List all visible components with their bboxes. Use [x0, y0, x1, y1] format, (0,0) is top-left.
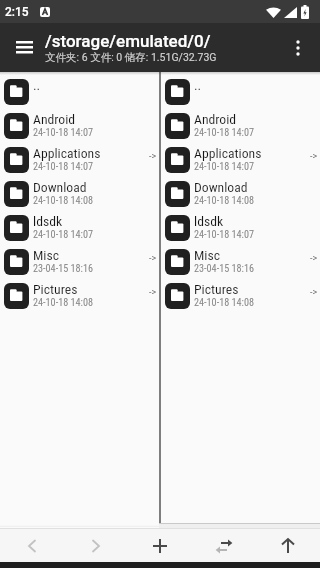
button[interactable]: Android [161, 109, 320, 143]
staticText: Pictures [194, 281, 239, 297]
staticText: 24-10-18 14:07 [194, 127, 255, 139]
staticText: -> [310, 253, 318, 264]
staticText: -> [310, 287, 318, 298]
staticText: 24-10-18 14:07 [194, 229, 255, 241]
button[interactable] [192, 529, 256, 562]
staticText: -> [149, 287, 157, 298]
button[interactable]: Download [0, 177, 159, 211]
staticText: 24-10-18 14:08 [194, 297, 255, 309]
staticText: 24-10-18 14:07 [33, 229, 94, 241]
staticText: -> [310, 151, 318, 162]
button[interactable]: Applications [0, 143, 159, 177]
button[interactable]: Download [161, 177, 320, 211]
button[interactable] [8, 31, 40, 63]
staticText: 24-10-18 14:08 [33, 297, 94, 309]
button[interactable]: .. [161, 75, 320, 109]
staticText: 24-10-18 14:08 [194, 195, 255, 207]
staticText: .. [194, 77, 202, 93]
button[interactable]: Misc [161, 245, 320, 279]
staticText: Download [194, 179, 248, 195]
staticText: ldsdk [33, 213, 63, 229]
staticText: Applications [194, 145, 262, 161]
staticText: /storage/emulated/0/ [45, 31, 211, 51]
staticText: Misc [33, 247, 60, 263]
staticText: Misc [194, 247, 221, 263]
staticText: Android [194, 111, 237, 127]
staticText: 24-10-18 14:07 [194, 161, 255, 173]
button[interactable] [128, 529, 192, 562]
staticText: 24-10-18 14:07 [33, 161, 94, 173]
staticText: 文件夹: 6 文件: 0 储存: 1.51G/32.73G [45, 51, 217, 64]
staticText: 23-04-15 18:16 [33, 263, 94, 275]
button[interactable]: Misc [0, 245, 159, 279]
button[interactable]: Applications [161, 143, 320, 177]
button[interactable] [0, 529, 64, 562]
button[interactable]: Pictures [0, 279, 159, 313]
button[interactable]: ldsdk [161, 211, 320, 245]
staticText: -> [149, 253, 157, 264]
button[interactable]: Pictures [161, 279, 320, 313]
staticText: Applications [33, 145, 101, 161]
button[interactable] [284, 34, 312, 62]
button[interactable]: Android [0, 109, 159, 143]
button[interactable] [64, 529, 128, 562]
staticText: -> [149, 151, 157, 162]
staticText: 23-04-15 18:16 [194, 263, 255, 275]
staticText: Android [33, 111, 76, 127]
button[interactable]: ldsdk [0, 211, 159, 245]
staticText: .. [33, 77, 41, 93]
staticText: ldsdk [194, 213, 224, 229]
staticText: Pictures [33, 281, 78, 297]
staticText: 24-10-18 14:07 [33, 127, 94, 139]
button[interactable] [256, 529, 320, 562]
staticText: 2:15 [5, 5, 29, 19]
staticText: 24-10-18 14:08 [33, 195, 94, 207]
button[interactable]: .. [0, 75, 159, 109]
staticText: Download [33, 179, 87, 195]
